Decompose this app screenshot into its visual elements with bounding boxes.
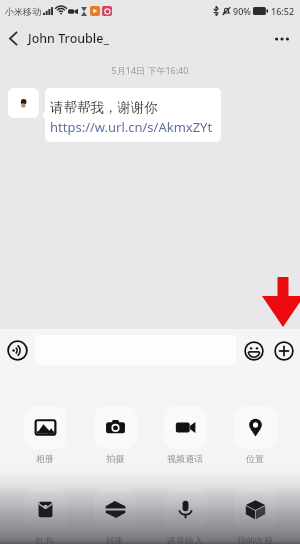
button[interactable]: 拍摄 xyxy=(80,406,150,464)
button[interactable]: 语音输入 xyxy=(150,488,220,544)
staticText: 我的收藏 xyxy=(237,535,273,544)
button[interactable]: More options xyxy=(264,22,300,55)
button[interactable]: 位置 xyxy=(220,406,290,464)
button[interactable]: 视频通话 xyxy=(150,406,220,464)
staticText: 拍摄 xyxy=(106,453,124,464)
button[interactable]: Contact avatar xyxy=(8,88,39,118)
staticText: 请帮帮我，谢谢你 xyxy=(50,99,158,116)
staticText: 视频通话 xyxy=(167,453,203,464)
staticText: 小米移动 xyxy=(5,6,41,17)
staticText: 相册 xyxy=(36,453,54,464)
staticText: 红包 xyxy=(36,535,54,544)
button[interactable]: 转账 xyxy=(80,488,150,544)
button[interactable]: Back xyxy=(0,22,27,55)
button[interactable]: More functions xyxy=(270,337,297,364)
button[interactable]: 请帮帮我，谢谢你 xyxy=(45,88,221,142)
button[interactable]: 红包 xyxy=(10,488,80,544)
staticText: 16:52 xyxy=(271,5,295,17)
staticText: 转账 xyxy=(106,535,124,544)
button[interactable]: 我的收藏 xyxy=(220,488,290,544)
staticText: 5月14日 下午16:40 xyxy=(0,64,300,76)
staticText: John Trouble_ xyxy=(28,30,109,47)
button[interactable]: Voice message xyxy=(4,337,31,364)
staticText: 语音输入 xyxy=(167,535,203,544)
staticText: 90% xyxy=(233,5,251,17)
staticText: 位置 xyxy=(246,453,264,464)
button[interactable]: Emoji xyxy=(240,337,267,364)
button[interactable]: 相册 xyxy=(10,406,80,464)
staticText: https://w.url.cn/s/AkmxZYt xyxy=(50,118,213,136)
